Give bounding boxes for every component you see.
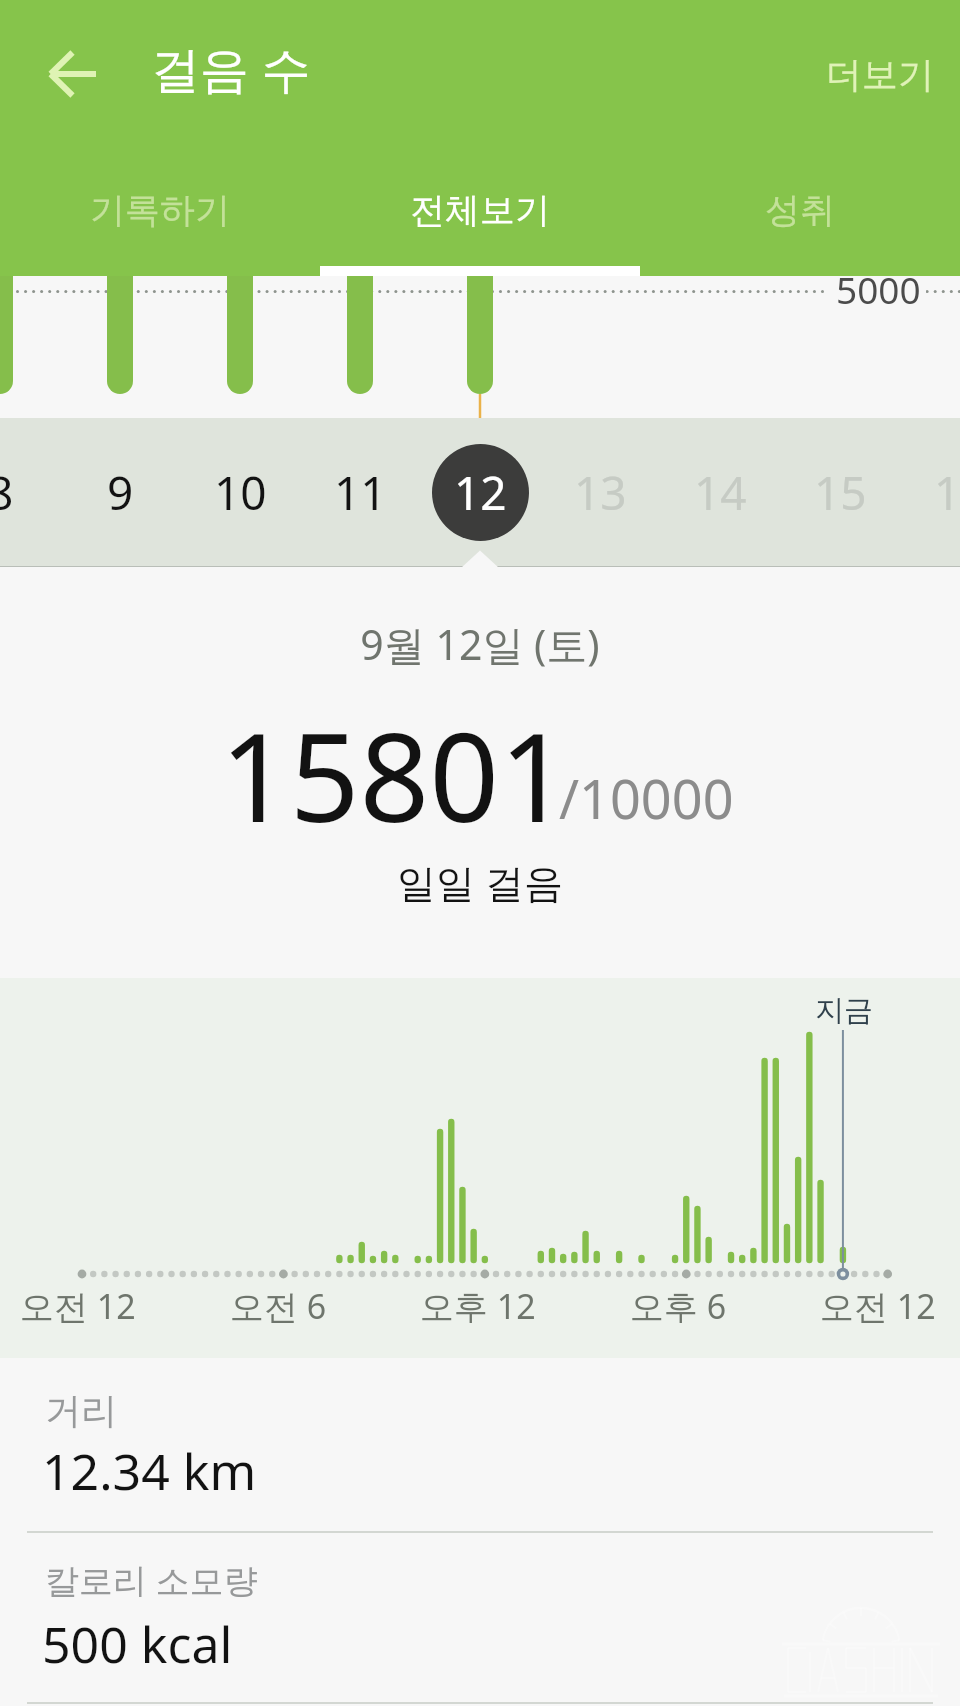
button[interactable] [0, 1358, 960, 1531]
staticText: 전체보기 [410, 188, 550, 232]
staticText: 15801 [220, 692, 569, 858]
button[interactable]: 13 [540, 418, 660, 566]
staticText: 15 [814, 461, 867, 524]
button[interactable]: 12 [420, 418, 540, 566]
staticText: 오후 6 [630, 1283, 727, 1329]
button[interactable]: Back [28, 30, 116, 118]
staticText: 기록하기 [90, 188, 230, 232]
button[interactable]: 기록하기 [0, 150, 320, 276]
staticText: 오전 12 [820, 1283, 936, 1329]
staticText: 오전 12 [20, 1283, 136, 1329]
staticText: 500 kcal [42, 1610, 233, 1678]
button[interactable]: 전체보기 [320, 150, 640, 276]
staticText: 성취 [765, 188, 835, 232]
staticText: 거리 [45, 1388, 117, 1433]
button[interactable]: 더보기 [796, 28, 960, 110]
button[interactable]: 16 [900, 418, 960, 566]
staticText: 12 [454, 461, 507, 524]
staticText: 걸음 수 [151, 35, 311, 102]
button[interactable]: 9 [60, 418, 180, 566]
staticText: 10 [214, 461, 267, 524]
staticText: 일일 걸음 [0, 855, 960, 908]
staticText: 12.34 km [42, 1437, 257, 1505]
button[interactable]: 성취 [640, 150, 960, 276]
staticText: 5000 [836, 276, 921, 314]
button[interactable]: 15 [780, 418, 900, 566]
staticText: 9월 12일 (토) [0, 616, 960, 672]
button[interactable]: 11 [300, 418, 420, 566]
button[interactable]: 10 [180, 418, 300, 566]
button[interactable]: 8 [0, 418, 60, 566]
staticText: 더보기 [826, 52, 934, 97]
staticText: 11 [334, 461, 387, 524]
staticText: 지금 [815, 992, 873, 1029]
button[interactable]: 14 [660, 418, 780, 566]
staticText: 16 [934, 461, 960, 524]
staticText: 칼로리 소모량 [45, 1557, 258, 1603]
staticText: 오후 12 [420, 1283, 536, 1329]
staticText: 8 [0, 461, 14, 524]
staticText: 오전 6 [230, 1283, 327, 1329]
staticText: 13 [574, 461, 627, 524]
button[interactable] [0, 1533, 960, 1702]
staticText: /10000 [559, 761, 734, 835]
staticText: 9 [107, 461, 134, 524]
staticText: 14 [694, 461, 747, 524]
